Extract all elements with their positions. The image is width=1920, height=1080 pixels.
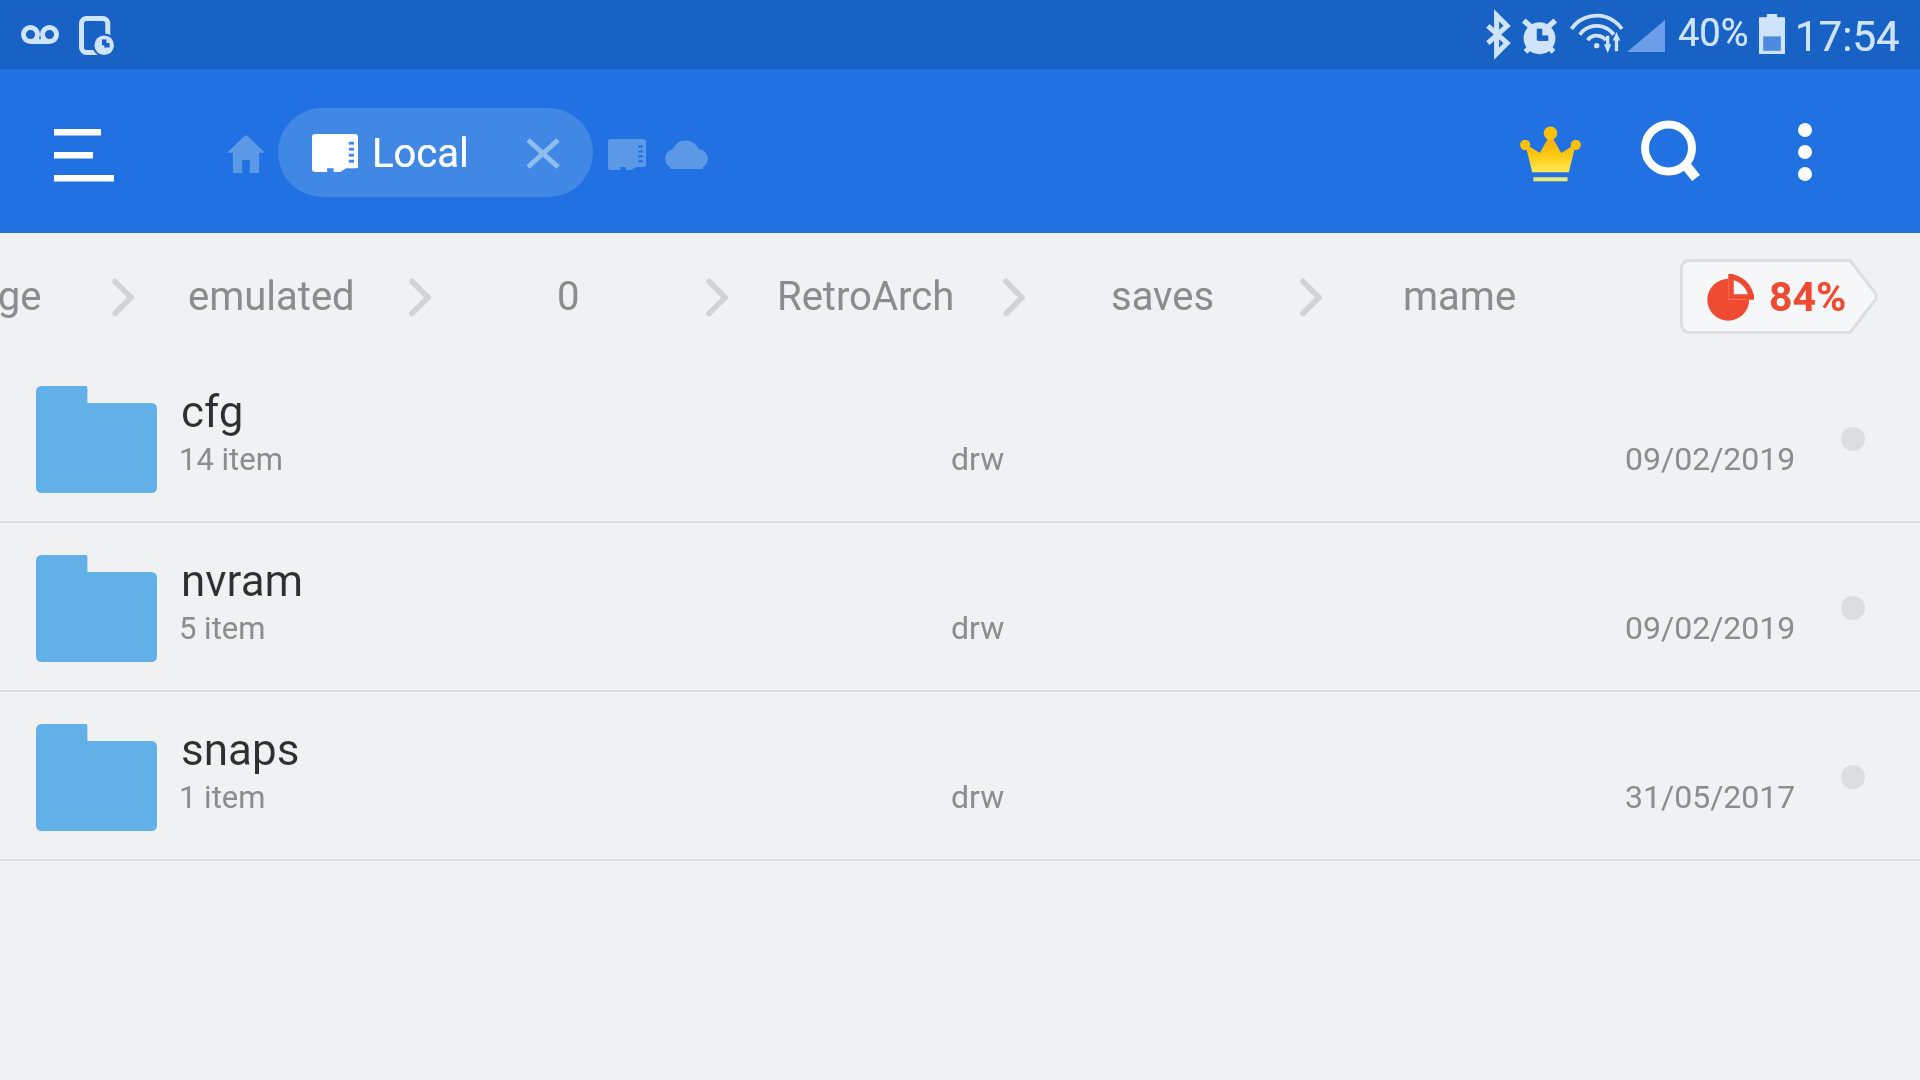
staticText: storage [0, 273, 42, 320]
staticText: Local [372, 130, 469, 177]
staticText: 5 item [179, 610, 266, 646]
button[interactable]: mame [1337, 233, 1582, 354]
button[interactable]: nvram [0, 523, 1920, 692]
button[interactable]: snaps [0, 692, 1920, 861]
button[interactable]: Home [209, 117, 282, 190]
staticText: snaps [181, 724, 300, 776]
staticText: 09/02/2019 [1625, 609, 1796, 647]
staticText: 09/02/2019 [1625, 440, 1796, 478]
staticText: drw [951, 609, 1005, 647]
button[interactable]: More options [1760, 110, 1850, 194]
button[interactable]: Local [278, 108, 593, 197]
staticText: 14 item [179, 441, 283, 477]
staticText: 31/05/2017 [1625, 778, 1796, 816]
staticText: RetroArch [777, 273, 955, 320]
staticText: saves [1111, 273, 1215, 320]
button[interactable]: storage [0, 233, 97, 354]
staticText: nvram [181, 555, 304, 607]
button[interactable]: SD card [589, 119, 664, 189]
staticText: 17:54 [1795, 12, 1900, 61]
button[interactable]: Cloud [651, 121, 721, 187]
staticText: 1 item [179, 779, 266, 815]
button[interactable]: cfg [0, 354, 1920, 523]
staticText: cfg [181, 386, 244, 438]
button[interactable]: Premium [1505, 112, 1596, 196]
button[interactable]: saves [1040, 233, 1285, 354]
button[interactable]: 0 [446, 233, 691, 354]
staticText: mame [1403, 273, 1517, 320]
staticText: emulated [188, 273, 355, 320]
button[interactable]: emulated [149, 233, 394, 354]
staticText: 40% [1678, 11, 1749, 56]
button[interactable]: Menu [24, 80, 144, 222]
button[interactable]: RetroArch [743, 233, 988, 354]
button[interactable]: Search [1626, 107, 1716, 197]
button[interactable]: 84% [1680, 259, 1878, 334]
staticText: 84% [1769, 273, 1847, 321]
staticText: drw [951, 440, 1005, 478]
staticText: 0 [557, 273, 580, 320]
staticText: drw [951, 778, 1005, 816]
